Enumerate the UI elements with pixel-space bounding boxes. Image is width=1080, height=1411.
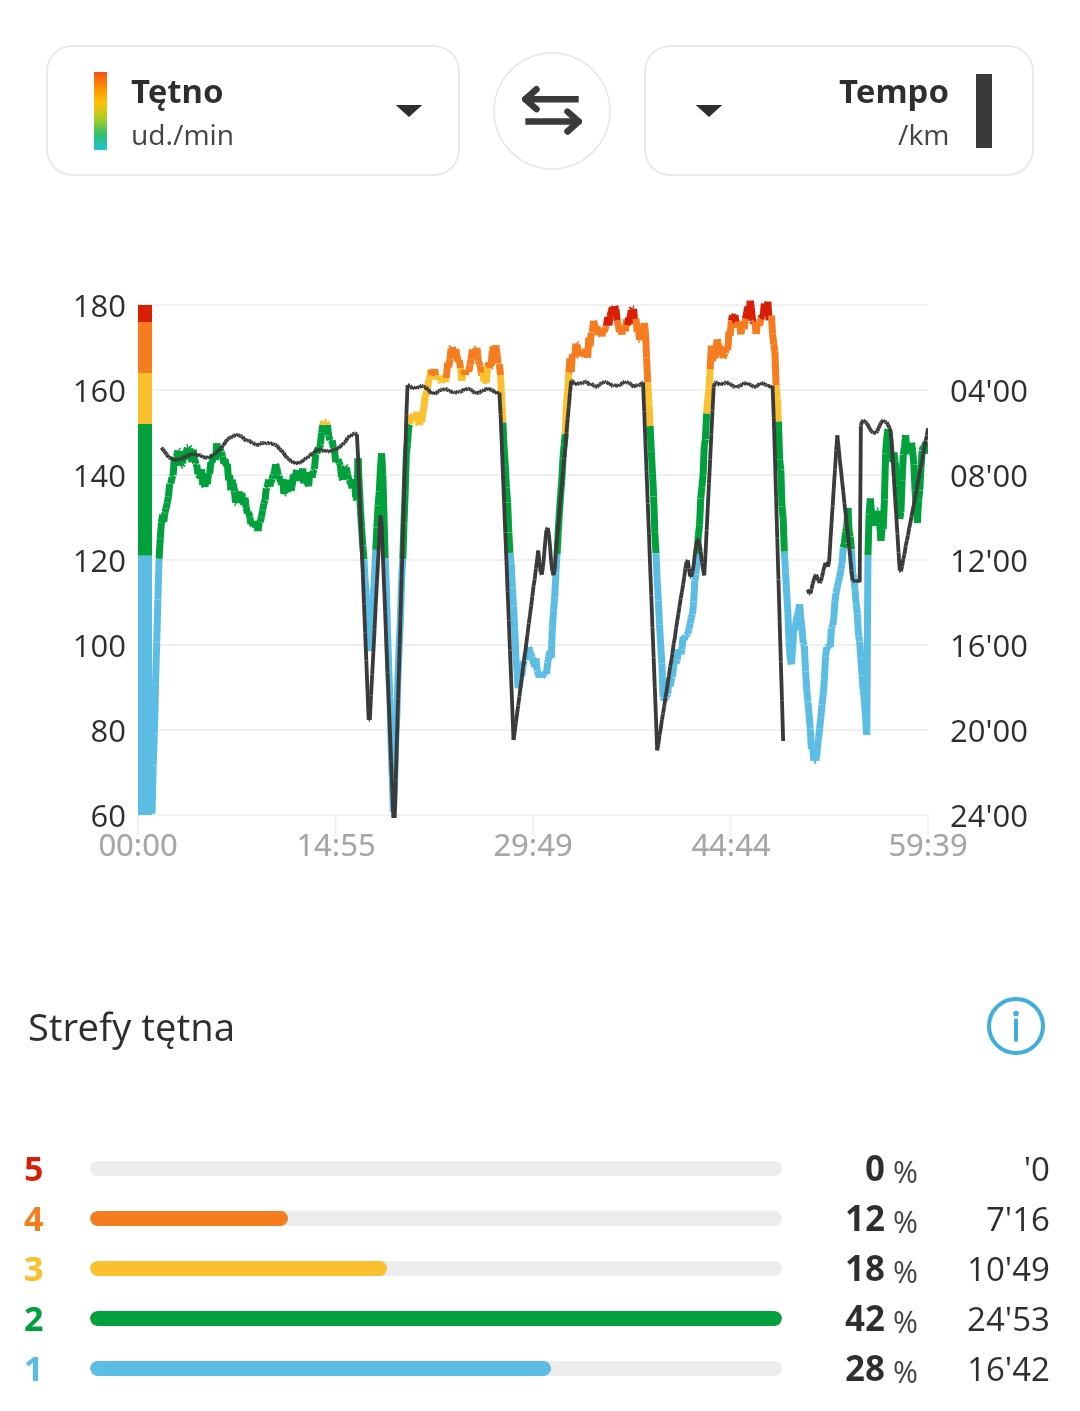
button[interactable]: Tempo: [644, 45, 1034, 176]
staticText: 3: [24, 1245, 44, 1291]
staticText: 7'16: [918, 1196, 1050, 1241]
staticText: 08'00: [950, 454, 1028, 496]
staticText: 24'00: [950, 794, 1028, 836]
staticText: 29:49: [453, 823, 613, 865]
staticText: 4: [24, 1195, 44, 1241]
staticText: ud./min: [131, 115, 235, 153]
staticText: %: [893, 1301, 918, 1342]
button[interactable]: 5: [0, 1143, 1080, 1193]
staticText: 28: [845, 1344, 886, 1392]
staticText: 12: [845, 1194, 886, 1242]
staticText: 140: [0, 454, 126, 496]
button[interactable]: Tętno: [46, 45, 460, 176]
staticText: Strefy tętna: [28, 1000, 235, 1052]
staticText: %: [893, 1151, 918, 1192]
button[interactable]: Zamień osie: [493, 52, 611, 170]
staticText: 04'00: [950, 369, 1028, 411]
staticText: 120: [0, 539, 126, 581]
staticText: 00:00: [58, 823, 218, 865]
button[interactable]: 4: [0, 1193, 1080, 1243]
staticText: 1: [24, 1345, 44, 1391]
staticText: Tętno: [131, 68, 224, 113]
staticText: 0: [865, 1144, 886, 1192]
staticText: %: [893, 1251, 918, 1292]
staticText: 44:44: [651, 823, 811, 865]
staticText: 12'00: [950, 539, 1028, 581]
staticText: 42: [845, 1294, 886, 1342]
staticText: 18: [845, 1244, 886, 1292]
staticText: '0: [918, 1146, 1050, 1191]
staticText: %: [893, 1201, 918, 1242]
staticText: 100: [0, 624, 126, 666]
staticText: 60: [0, 794, 126, 836]
staticText: 59:39: [848, 823, 1008, 865]
staticText: 20'00: [950, 709, 1028, 751]
staticText: /km: [898, 115, 950, 153]
staticText: 10'49: [918, 1246, 1050, 1291]
staticText: 16'00: [950, 624, 1028, 666]
button[interactable]: 2: [0, 1293, 1080, 1343]
staticText: 24'53: [918, 1296, 1050, 1341]
staticText: %: [893, 1351, 918, 1392]
staticText: 160: [0, 369, 126, 411]
staticText: 2: [24, 1295, 44, 1341]
staticText: 80: [0, 709, 126, 751]
staticText: 5: [24, 1145, 44, 1191]
staticText: Tempo: [839, 68, 950, 113]
staticText: 14:55: [256, 823, 416, 865]
button[interactable]: Informacje o strefach tętna: [980, 990, 1052, 1062]
staticText: 16'42: [918, 1346, 1050, 1391]
button[interactable]: 3: [0, 1243, 1080, 1293]
button[interactable]: 1: [0, 1343, 1080, 1393]
staticText: 180: [0, 284, 126, 326]
